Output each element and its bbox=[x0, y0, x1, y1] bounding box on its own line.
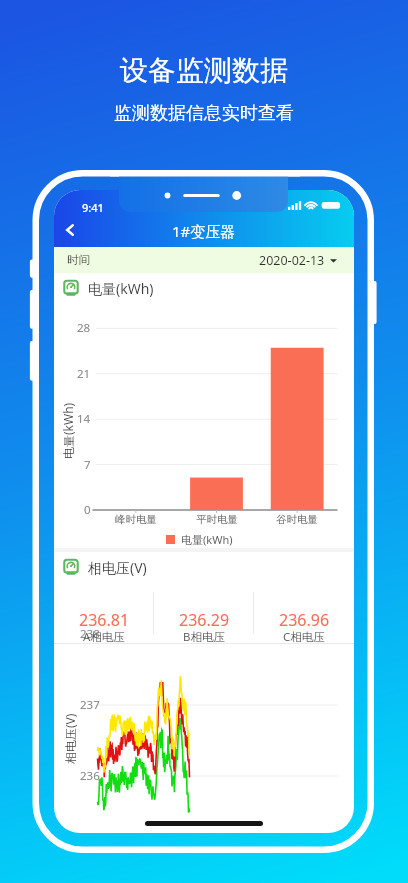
staticText: 236 bbox=[80, 768, 100, 784]
staticText: 238 bbox=[80, 626, 100, 642]
staticText: 14 bbox=[77, 411, 91, 427]
staticText: 设备监测数据 bbox=[120, 53, 288, 88]
staticText: A相电压 bbox=[83, 629, 125, 645]
staticText: C相电压 bbox=[283, 629, 325, 645]
staticText: 236.81 bbox=[79, 609, 130, 631]
staticText: 平时电量 bbox=[196, 513, 238, 526]
button[interactable]: 返回 bbox=[56, 215, 92, 245]
staticText: 谷时电量 bbox=[276, 513, 318, 526]
staticText: 电量(kWh) bbox=[181, 532, 233, 547]
button[interactable]: 时间 bbox=[54, 247, 354, 273]
button[interactable]: 236.81 bbox=[54, 582, 154, 644]
staticText: 相电压(V) bbox=[62, 713, 78, 764]
staticText: 相电压(V) bbox=[88, 558, 147, 577]
staticText: 28 bbox=[77, 320, 91, 336]
staticText: 237 bbox=[80, 697, 100, 713]
staticText: 1#变压器 bbox=[172, 221, 236, 241]
staticText: 7 bbox=[84, 457, 91, 473]
staticText: B相电压 bbox=[183, 629, 225, 645]
staticText: 峰时电量 bbox=[115, 513, 157, 526]
staticText: 电量(kWh) bbox=[88, 279, 154, 298]
button[interactable]: 236.29 bbox=[154, 582, 254, 644]
staticText: 0 bbox=[84, 502, 91, 518]
staticText: 2020-02-13 bbox=[259, 252, 325, 269]
staticText: 时间 bbox=[67, 253, 90, 267]
staticText: 9:41 bbox=[82, 200, 104, 215]
staticText: 监测数据信息实时查看 bbox=[114, 102, 294, 125]
staticText: 电量(kWh) bbox=[60, 402, 76, 459]
staticText: 236.96 bbox=[279, 609, 330, 631]
button[interactable]: 236.96 bbox=[254, 582, 354, 644]
staticText: 236.29 bbox=[179, 609, 230, 631]
staticText: 21 bbox=[77, 366, 91, 382]
